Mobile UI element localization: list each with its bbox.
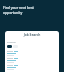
button[interactable] — [5, 64, 59, 70]
button[interactable] — [7, 45, 12, 48]
button[interactable] — [5, 57, 59, 63]
staticText: Popular — [7, 40, 16, 43]
staticText: Find your next best opportunity — [3, 5, 34, 15]
button[interactable] — [5, 50, 59, 56]
staticText: Job Search — [5, 33, 59, 37]
